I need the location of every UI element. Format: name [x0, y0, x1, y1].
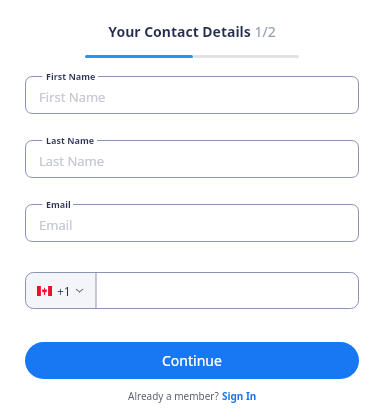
staticText: Email	[46, 198, 71, 210]
staticText: +1	[57, 283, 71, 299]
button[interactable]: Email	[25, 204, 359, 242]
staticText: Already a member?	[128, 389, 222, 403]
button[interactable]: Last Name	[25, 140, 359, 178]
staticText: Last Name	[46, 134, 95, 146]
button[interactable]	[96, 272, 359, 309]
staticText: Continue	[162, 351, 222, 370]
button[interactable]: Continue	[25, 342, 359, 379]
staticText: First Name	[39, 88, 106, 106]
button[interactable]: Sign In	[222, 389, 257, 403]
button[interactable]: Select country code	[25, 272, 96, 309]
staticText: First Name	[46, 70, 96, 82]
button[interactable]: First Name	[25, 76, 359, 114]
staticText: Last Name	[39, 152, 105, 170]
staticText: Email	[39, 216, 73, 234]
staticText: Your Contact Details 1/2	[108, 22, 276, 41]
staticText: Sign In	[222, 389, 257, 403]
